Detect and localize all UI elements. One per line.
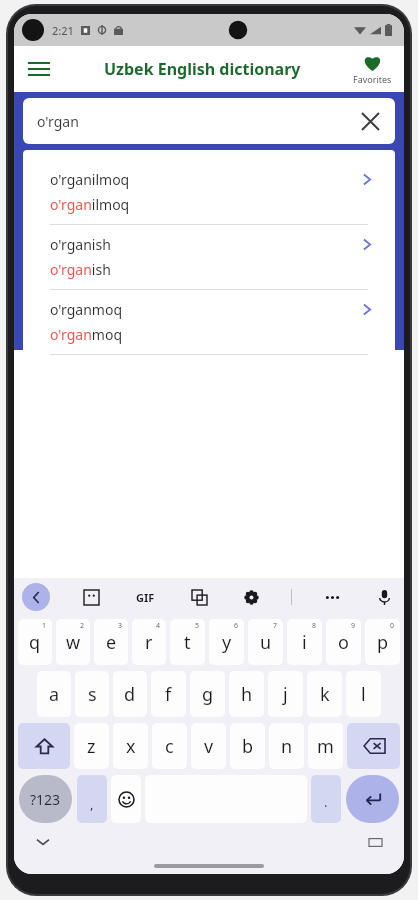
staticText: 5 [195,621,200,631]
button[interactable]: o'rganilmoq [23,164,395,229]
staticText: m [317,734,334,759]
staticText: x [126,734,136,759]
button[interactable]: Stickers [79,585,103,609]
button[interactable]: Translate [187,585,211,609]
staticText: z [87,734,96,759]
button[interactable]: o'rganmoq [23,294,395,359]
staticText: o'rganish [50,235,111,254]
button[interactable]: Emoji [111,775,141,823]
staticText: a [49,682,60,707]
button[interactable]: Shift [18,723,70,769]
button[interactable]: 7 [248,619,283,665]
button[interactable]: GIF [132,586,159,609]
button[interactable]: . [311,775,341,823]
button[interactable]: 5 [170,619,205,665]
button[interactable]: 8 [287,619,322,665]
staticText: 2 [80,621,85,631]
button[interactable]: 4 [132,619,166,665]
button[interactable]: z [74,723,109,769]
button[interactable]: Clear [355,106,385,136]
staticText: 4 [156,621,161,631]
button[interactable]: Back [22,583,50,611]
button[interactable]: , [77,775,107,823]
button[interactable]: Backspace [347,723,400,769]
button[interactable]: j [268,671,303,717]
button[interactable]: m [308,723,343,769]
button[interactable]: d [113,671,147,717]
button[interactable]: ?123 [19,775,72,823]
staticText: o'rgan [37,112,79,131]
button[interactable]: o'rganish [23,229,395,294]
button[interactable]: o'rgan [23,98,395,144]
button[interactable]: Switch keyboard [364,831,386,853]
staticText: o'rganish [50,260,111,279]
staticText: 8 [312,621,317,631]
staticText: b [242,734,254,759]
staticText: d [124,682,136,707]
staticText: f [165,682,172,707]
button[interactable]: s [75,671,109,717]
staticText: k [320,682,330,707]
staticText: 1 [42,621,47,631]
staticText: s [88,682,97,707]
staticText: w [66,630,81,655]
staticText: r [145,630,153,655]
button[interactable]: c [152,723,187,769]
staticText: p [377,630,389,655]
button[interactable]: More [320,585,344,609]
button[interactable]: Menu [14,46,64,92]
staticText: v [204,734,214,759]
staticText: n [281,734,293,759]
staticText: 0 [390,621,395,631]
staticText: t [184,630,191,655]
staticText: o'rganilmoq [50,195,130,214]
button[interactable]: 0 [365,619,400,665]
staticText: l [361,682,366,707]
staticText: o [338,630,349,655]
staticText: . [324,793,328,811]
button[interactable]: 6 [209,619,244,665]
button[interactable]: x [113,723,148,769]
button[interactable]: h [229,671,264,717]
button[interactable]: 3 [94,619,128,665]
button[interactable]: Hide keyboard [32,831,54,853]
staticText: , [90,795,94,813]
staticText: h [241,682,253,707]
staticText: o'rganmoq [50,325,122,344]
button[interactable]: l [346,671,381,717]
button[interactable]: g [190,671,225,717]
staticText: 6 [234,621,239,631]
staticText: Uzbek English dictionary [104,58,301,80]
button[interactable]: n [269,723,304,769]
staticText: c [165,734,174,759]
button[interactable]: 9 [326,619,361,665]
staticText: o'rganmoq [50,300,122,319]
staticText: i [302,630,307,655]
staticText: 7 [273,621,278,631]
staticText: e [106,630,117,655]
button[interactable]: Settings [239,585,263,609]
staticText: o'rganilmoq [50,170,130,189]
staticText: j [283,682,288,707]
staticText: y [222,630,232,655]
button[interactable]: a [37,671,71,717]
staticText: q [29,630,41,655]
staticText: 3 [118,621,123,631]
button[interactable]: 2 [56,619,90,665]
button[interactable]: f [151,671,186,717]
button[interactable]: k [307,671,342,717]
button[interactable]: Enter [346,775,399,823]
button[interactable]: Favorites [340,46,404,92]
staticText: 2:21 [52,23,74,38]
button[interactable]: Voice input [372,585,396,609]
button[interactable]: 1 [18,619,52,665]
staticText: g [202,682,214,707]
staticText: u [260,630,272,655]
button[interactable]: v [191,723,226,769]
staticText: Favorites [353,73,392,85]
button[interactable]: b [230,723,265,769]
staticText: ?123 [30,790,61,809]
staticText: GIF [136,590,155,605]
staticText: 9 [351,621,356,631]
